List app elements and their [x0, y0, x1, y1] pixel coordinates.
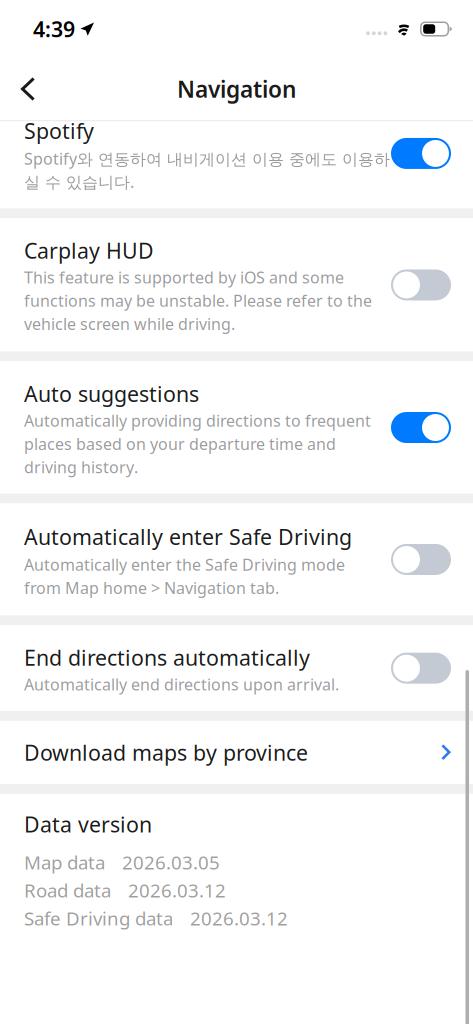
staticText: Auto suggestions — [24, 379, 199, 408]
button[interactable]: Toggle off — [391, 269, 451, 300]
staticText: This feature is supported by iOS and som… — [24, 267, 372, 334]
button[interactable]: Toggle off — [391, 653, 451, 684]
button[interactable]: End directions automatically — [0, 625, 473, 711]
staticText: Map data — [24, 850, 105, 875]
staticText: Navigation — [177, 74, 296, 104]
staticText: Automatically end directions upon arriva… — [24, 674, 339, 695]
button[interactable]: Carplay HUD — [0, 218, 473, 351]
staticText: 2026.03.05 — [122, 850, 220, 875]
button[interactable]: Toggle on — [391, 138, 451, 169]
staticText: End directions automatically — [24, 643, 310, 672]
staticText: Automatically enter the Safe Driving mod… — [24, 554, 345, 598]
staticText: Safe Driving data — [24, 906, 173, 931]
staticText: Spotify와 연동하여 내비게이션 이용 중에도 이용하실 수 있습니다. — [24, 148, 390, 192]
button[interactable]: Toggle on — [391, 412, 451, 443]
staticText: Road data — [24, 878, 111, 903]
staticText: 2026.03.12 — [128, 878, 226, 903]
staticText: Automatically providing directions to fr… — [24, 410, 371, 477]
staticText: 2026.03.12 — [190, 906, 288, 931]
button[interactable]: Auto suggestions — [0, 361, 473, 494]
staticText: Automatically enter Safe Driving — [24, 523, 352, 551]
staticText: Download maps by province — [24, 738, 308, 767]
button[interactable]: Back — [0, 67, 49, 111]
button[interactable]: Automatically enter Safe Driving — [0, 504, 473, 615]
staticText: Spotify — [24, 116, 94, 145]
staticText: Carplay HUD — [24, 236, 154, 265]
button[interactable]: Toggle off — [391, 544, 451, 575]
staticText: 4:39 — [33, 15, 75, 43]
staticText: Data version — [24, 810, 152, 838]
button[interactable]: Spotify — [0, 98, 473, 208]
button[interactable]: Download maps by province — [0, 721, 473, 784]
